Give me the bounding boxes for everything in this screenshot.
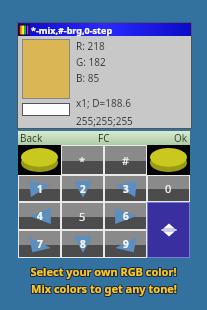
button[interactable]: 4 xyxy=(19,203,60,229)
staticText: 4 xyxy=(37,209,43,223)
button[interactable]: 5 xyxy=(62,203,103,229)
button[interactable]: Back xyxy=(18,131,45,145)
button[interactable]: FC xyxy=(98,131,110,145)
staticText: 9 xyxy=(123,237,129,251)
staticText: 6 xyxy=(123,209,129,223)
staticText: Mix colors to get any tone! xyxy=(30,282,176,297)
button[interactable]: # xyxy=(105,146,146,174)
staticText: 2 xyxy=(80,182,86,196)
button[interactable]: 9 xyxy=(105,231,146,257)
button[interactable]: 1 xyxy=(19,176,60,201)
button[interactable]: Right soft key xyxy=(147,145,190,175)
button[interactable]: 7 xyxy=(19,231,60,257)
staticText: Mix colors to get any tone! xyxy=(32,281,178,296)
button[interactable]: 8 xyxy=(62,231,103,257)
staticText: Mix colors to get any tone! xyxy=(31,282,177,297)
staticText: Select your own RGB color! xyxy=(30,264,177,279)
staticText: 1 xyxy=(37,182,43,196)
staticText: x1; D=188.6 xyxy=(76,96,131,110)
staticText: Select your own RGB color! xyxy=(29,265,176,280)
staticText: R: 218 xyxy=(76,39,105,53)
staticText: 7 xyxy=(37,237,43,251)
staticText: Select your own RGB color! xyxy=(29,263,176,278)
button[interactable]: 6 xyxy=(105,203,146,229)
button[interactable]: App icon xyxy=(18,23,191,36)
button[interactable]: Left soft key xyxy=(18,145,61,175)
staticText: Select your own RGB color! xyxy=(31,264,178,279)
staticText: Mix colors to get any tone! xyxy=(32,280,178,295)
staticText: Select your own RGB color! xyxy=(31,265,178,280)
staticText: 5 xyxy=(79,209,86,224)
staticText: Mix colors to get any tone! xyxy=(31,281,177,296)
staticText: Select your own RGB color! xyxy=(31,263,178,278)
staticText: 3 xyxy=(123,182,129,196)
staticText: # xyxy=(122,153,130,168)
staticText: Select your own RGB color! xyxy=(30,263,177,278)
button[interactable]: 3 xyxy=(105,176,146,201)
staticText: * xyxy=(79,153,86,168)
staticText: Mix colors to get any tone! xyxy=(30,280,176,295)
staticText: 8 xyxy=(80,237,86,251)
staticText: Mix colors to get any tone! xyxy=(30,281,176,296)
staticText: *-mix,#-brg,0-step xyxy=(31,24,113,36)
staticText: 0 xyxy=(165,181,172,196)
button[interactable]: * xyxy=(62,146,103,174)
staticText: Select your own RGB color! xyxy=(29,264,176,279)
staticText: 255;255;255 xyxy=(76,114,133,128)
button[interactable]: 2 xyxy=(62,176,103,201)
staticText: G: 182 xyxy=(76,55,106,69)
button[interactable]: 0 xyxy=(148,176,189,201)
staticText: Mix colors to get any tone! xyxy=(31,280,177,295)
staticText: Select your own RGB color! xyxy=(30,265,177,280)
staticText: B: 85 xyxy=(76,71,100,85)
button[interactable]: Navigate up or down xyxy=(148,203,189,257)
other: App icon xyxy=(19,25,29,35)
staticText: Mix colors to get any tone! xyxy=(32,282,178,297)
button[interactable]: Ok xyxy=(172,131,190,145)
